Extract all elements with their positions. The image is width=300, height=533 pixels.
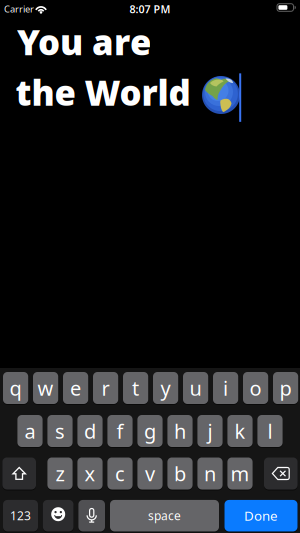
button[interactable]: m — [227, 457, 253, 489]
button[interactable]: o — [243, 372, 268, 404]
button[interactable]: u — [183, 372, 208, 404]
staticText: t — [132, 375, 139, 401]
button[interactable]: i — [213, 372, 238, 404]
button[interactable]: j — [197, 415, 223, 447]
staticText: c — [115, 460, 125, 487]
button[interactable]: Emoji — [43, 500, 73, 531]
staticText: You are — [17, 19, 151, 65]
staticText: x — [84, 460, 95, 487]
button[interactable]: h — [167, 415, 193, 447]
staticText: m — [230, 460, 249, 487]
button[interactable]: f — [107, 415, 133, 447]
button[interactable]: e — [63, 372, 88, 404]
staticText: 8:07 PM — [129, 2, 170, 16]
button[interactable]: z — [47, 457, 73, 489]
staticText: r — [102, 375, 110, 401]
button[interactable]: t — [123, 372, 148, 404]
staticText: a — [24, 418, 35, 444]
button[interactable]: Numbers — [3, 500, 38, 531]
button[interactable]: p — [273, 372, 298, 404]
staticText: f — [116, 418, 123, 444]
button[interactable]: n — [197, 457, 223, 489]
staticText: Carrier — [4, 3, 34, 15]
button[interactable]: b — [167, 457, 193, 489]
staticText: space — [148, 508, 181, 524]
staticText: q — [10, 375, 22, 401]
staticText: b — [174, 460, 186, 487]
button[interactable]: c — [107, 457, 133, 489]
button[interactable]: a — [17, 415, 43, 447]
staticText: u — [190, 375, 202, 401]
staticText: e — [70, 375, 81, 401]
button[interactable]: y — [153, 372, 178, 404]
staticText: z — [55, 460, 64, 487]
staticText: h — [174, 418, 186, 444]
button[interactable]: v — [137, 457, 163, 489]
staticText: d — [84, 418, 96, 444]
staticText: n — [204, 460, 216, 487]
staticText: j — [207, 418, 212, 444]
button[interactable]: Dictate — [78, 500, 105, 531]
staticText: l — [267, 418, 272, 444]
button[interactable]: w — [33, 372, 58, 404]
button[interactable]: g — [137, 415, 163, 447]
staticText: the World — [15, 69, 190, 115]
staticText: k — [234, 418, 245, 444]
button[interactable]: Shift — [2, 457, 36, 489]
button[interactable]: d — [77, 415, 103, 447]
button[interactable]: space — [110, 500, 219, 531]
button[interactable]: Done — [224, 500, 297, 531]
staticText: v — [145, 460, 155, 487]
button[interactable]: x — [77, 457, 103, 489]
button[interactable]: Delete — [264, 457, 298, 489]
button[interactable]: r — [93, 372, 118, 404]
staticText: Done — [244, 507, 278, 524]
staticText: y — [161, 375, 171, 401]
staticText: g — [144, 418, 156, 444]
staticText: w — [38, 375, 54, 401]
button[interactable]: s — [47, 415, 73, 447]
staticText: p — [280, 375, 292, 401]
staticText: 123 — [10, 508, 31, 524]
staticText: i — [223, 375, 228, 401]
button[interactable]: q — [3, 372, 28, 404]
staticText: s — [55, 418, 65, 444]
staticText: o — [250, 375, 262, 401]
button[interactable]: l — [257, 415, 283, 447]
button[interactable]: k — [227, 415, 253, 447]
